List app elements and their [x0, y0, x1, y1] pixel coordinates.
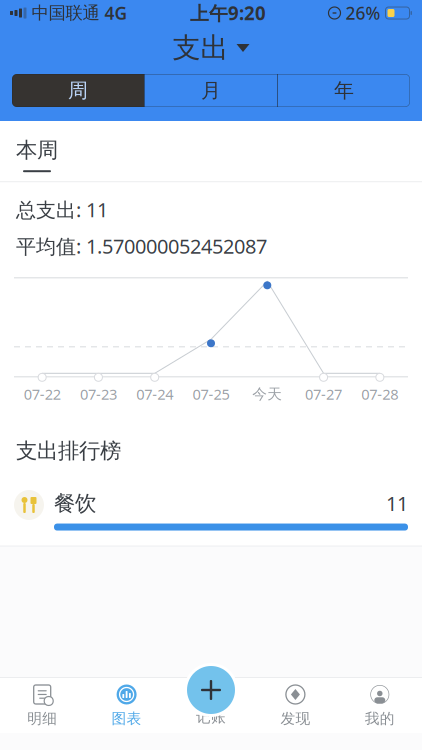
button[interactable]: 支出 — [158, 26, 263, 70]
staticText: 07-22 — [24, 384, 61, 404]
button[interactable]: 发现 — [253, 678, 338, 733]
staticText: 年 — [334, 78, 354, 103]
staticText: 记账 — [196, 708, 226, 726]
button[interactable]: 记账 — [183, 662, 239, 718]
staticText: 总支出: 11 — [16, 196, 108, 223]
staticText: 支出排行榜 — [16, 438, 121, 464]
staticText: 发现 — [280, 709, 310, 727]
staticText: 图表 — [112, 709, 142, 727]
staticText: 4G — [104, 1, 127, 24]
staticText: 07-28 — [361, 384, 398, 404]
staticText: 07-23 — [80, 384, 117, 404]
button[interactable]: 记账 — [169, 678, 253, 733]
staticText: 今天 — [252, 385, 282, 403]
staticText: 07-24 — [136, 384, 173, 404]
button[interactable]: 明细 — [0, 678, 84, 733]
button[interactable]: 图表 — [84, 678, 169, 733]
staticText: 07-27 — [305, 384, 342, 404]
staticText: 07-25 — [192, 384, 229, 404]
staticText: 上午9:20 — [190, 1, 266, 25]
staticText: 我的 — [365, 709, 395, 727]
staticText: 周 — [68, 78, 88, 103]
button[interactable]: 周 — [12, 74, 144, 107]
button[interactable]: 月 — [145, 74, 277, 107]
button[interactable]: 年 — [278, 74, 410, 107]
button[interactable]: 餐饮 — [0, 464, 422, 531]
staticText: 本周 — [16, 137, 58, 163]
button[interactable]: 我的 — [338, 678, 422, 733]
staticText: 月 — [201, 78, 221, 103]
staticText: 中国联通 — [31, 2, 99, 24]
staticText: 11 — [386, 490, 408, 517]
staticText: 明细 — [27, 709, 57, 727]
staticText: 餐饮 — [54, 490, 96, 516]
button[interactable]: 本周 — [0, 121, 74, 182]
staticText: 支出 — [172, 31, 228, 65]
staticText: 平均值: 1.570000052452087 — [16, 233, 267, 259]
staticText: 26% — [345, 1, 380, 24]
